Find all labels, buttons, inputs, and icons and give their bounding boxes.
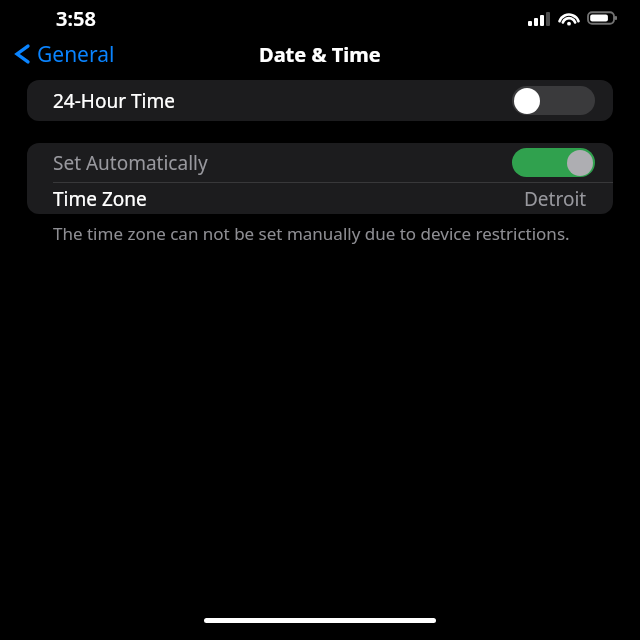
button[interactable]: Time Zone: [27, 183, 613, 214]
staticText: Time Zone: [53, 186, 524, 212]
button[interactable]: Toggle on: [512, 148, 595, 177]
button[interactable]: Toggle off: [512, 86, 595, 115]
staticText: 3:58: [56, 5, 96, 32]
staticText: Date & Time: [259, 41, 381, 68]
staticText: The time zone can not be set manually du…: [53, 222, 570, 245]
staticText: Set Automatically: [53, 150, 512, 176]
staticText: 24-Hour Time: [53, 88, 512, 114]
staticText: General: [37, 40, 115, 68]
staticText: Detroit: [524, 186, 587, 212]
button[interactable]: General: [0, 36, 127, 72]
button[interactable]: Set Automatically: [27, 143, 613, 182]
button[interactable]: 24-Hour Time: [27, 80, 613, 121]
